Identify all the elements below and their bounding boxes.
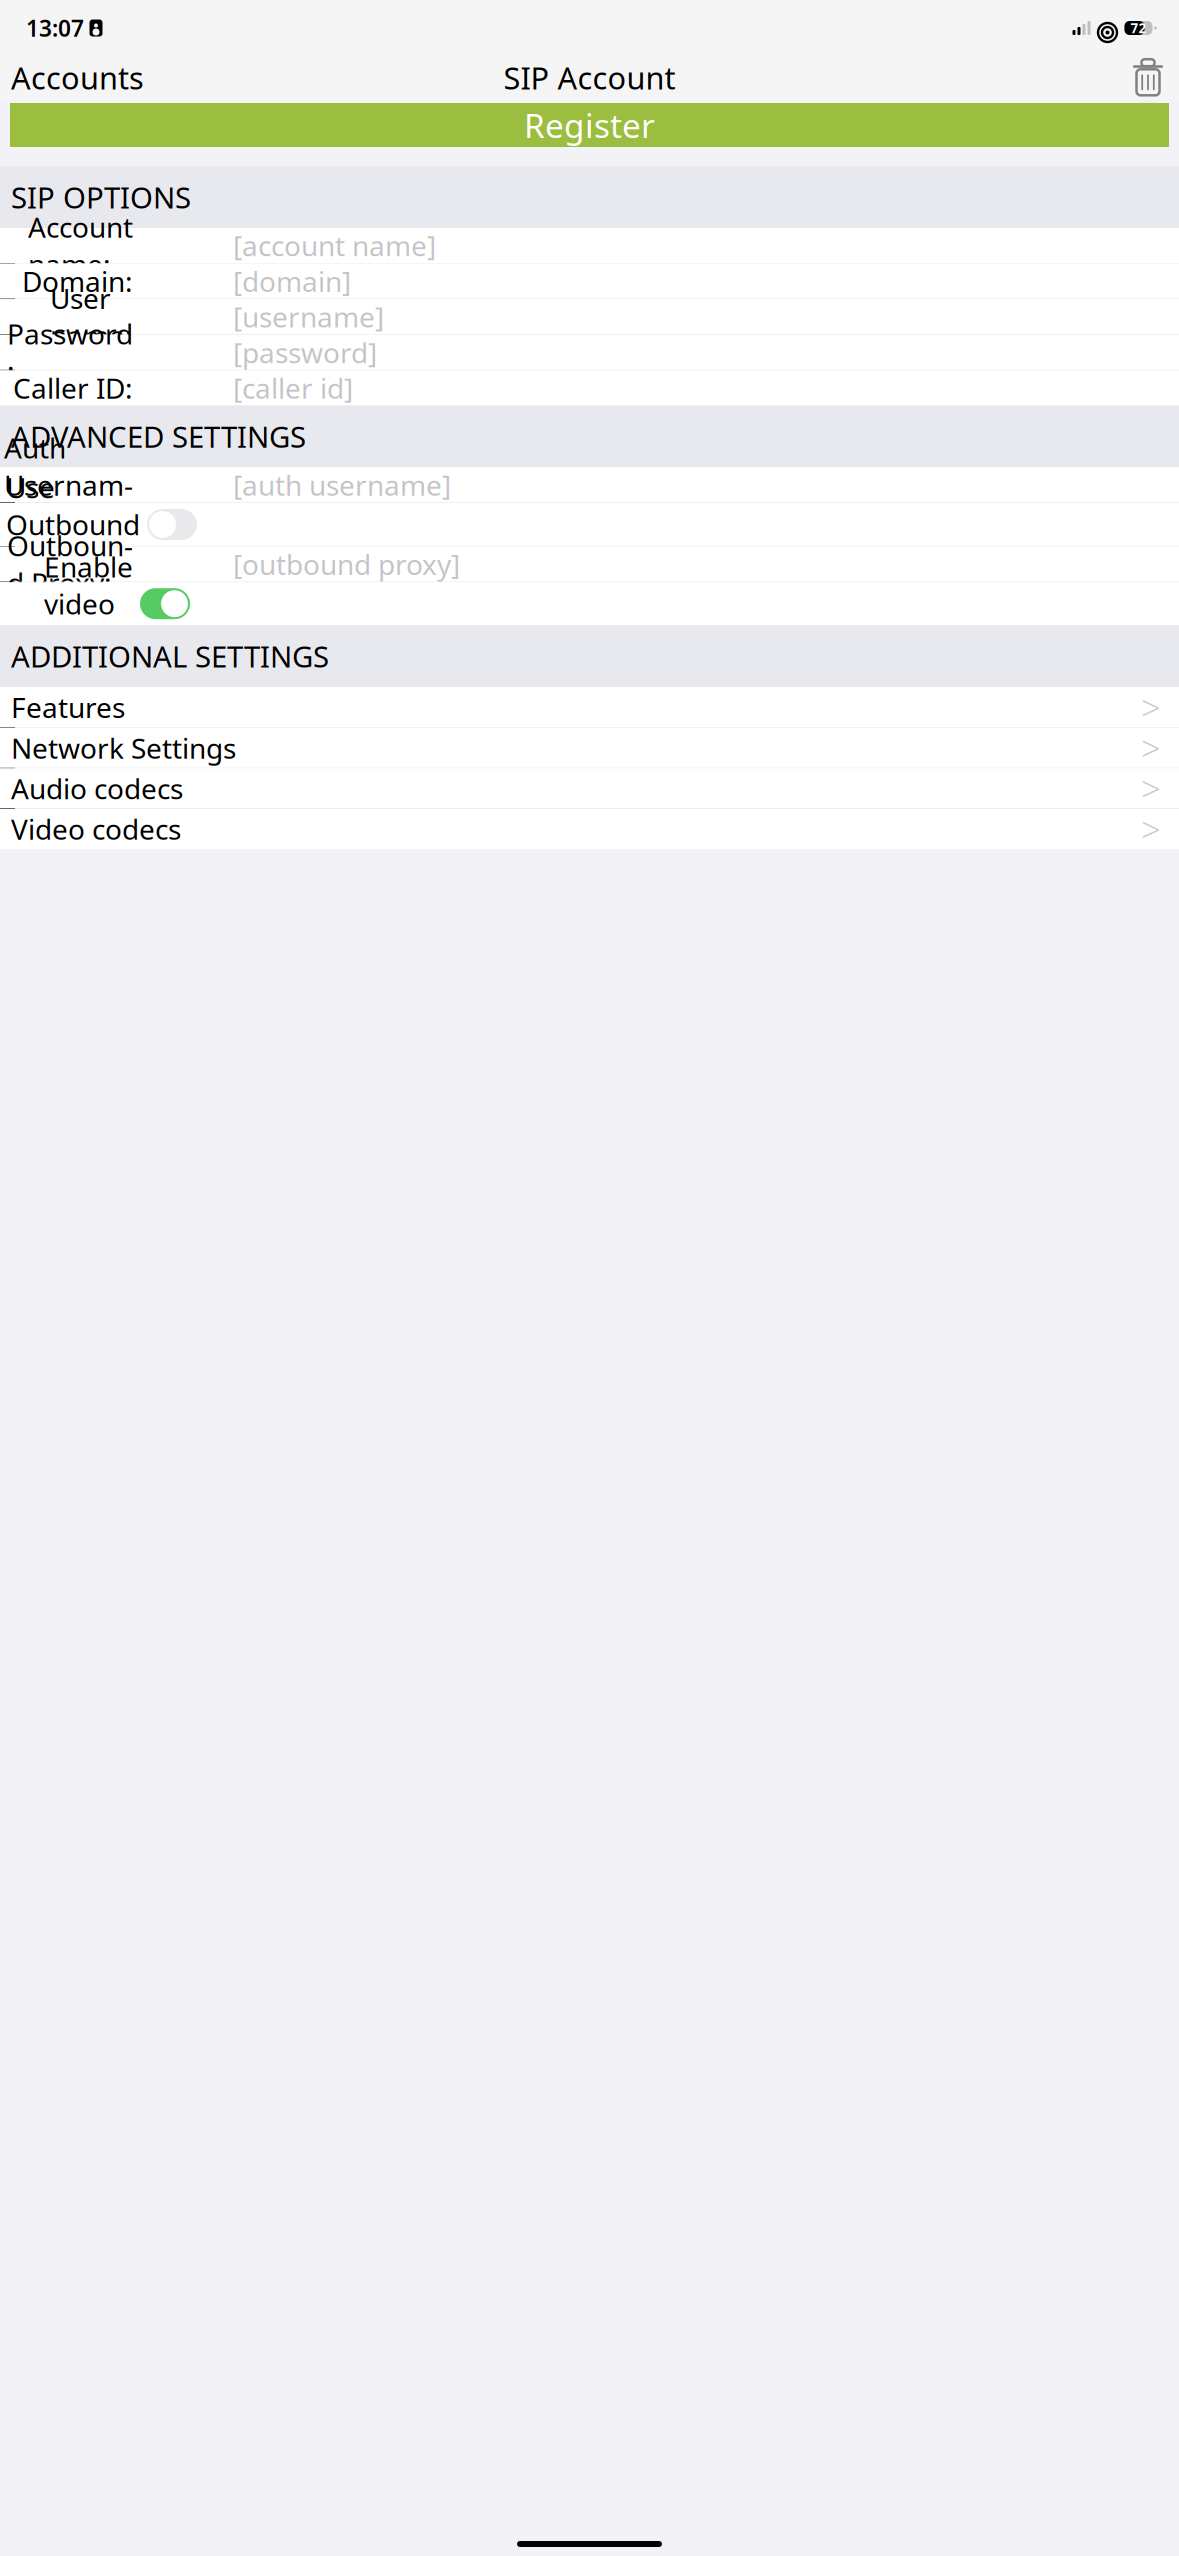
staticText: [domain] <box>233 262 351 300</box>
staticText: Caller ID: <box>13 369 133 406</box>
button[interactable]: Caller ID: <box>0 370 1179 405</box>
button[interactable]: Enable video FMTP <box>0 582 1179 625</box>
staticText: Domain: <box>22 262 133 300</box>
staticText: Network Settings <box>11 729 236 766</box>
staticText: > <box>1141 684 1161 730</box>
button[interactable]: Auth Username: <box>0 467 1179 502</box>
staticText: [caller id] <box>233 369 353 406</box>
button[interactable]: Network Settings <box>0 728 1179 768</box>
staticText: [outbound proxy] <box>233 545 460 583</box>
button[interactable]: Features <box>0 687 1179 727</box>
staticText: Features <box>11 689 125 726</box>
staticText: User name: <box>50 279 133 354</box>
button[interactable]: Use Outbound Proxy: <box>0 503 1179 546</box>
staticText: ADDITIONAL SETTINGS <box>11 637 329 676</box>
button[interactable]: Domain: <box>0 264 1179 299</box>
staticText: Use Outbound Proxy: <box>6 469 140 580</box>
staticText: 13:07 <box>26 13 84 43</box>
button[interactable]: Accounts <box>0 47 144 108</box>
staticText: Register <box>524 103 655 147</box>
staticText: Audio codecs <box>11 770 183 807</box>
staticText: [account name] <box>233 227 436 264</box>
staticText: > <box>1141 806 1161 852</box>
staticText: Password: <box>7 315 133 389</box>
staticText: > <box>1141 725 1161 771</box>
button[interactable]: Outbound Proxy: <box>0 547 1179 582</box>
staticText: Account name: <box>28 208 133 283</box>
staticText: SIP OPTIONS <box>11 177 191 216</box>
staticText: Outbound Proxy: <box>7 527 133 601</box>
button[interactable]: User name: <box>0 299 1179 334</box>
staticText: > <box>1141 765 1161 811</box>
button[interactable]: Password: <box>0 335 1179 370</box>
button[interactable]: Audio codecs <box>0 768 1179 808</box>
staticText: Enable video FMTP <box>44 548 133 659</box>
button[interactable]: Register <box>10 103 1169 147</box>
staticText: [username] <box>233 298 384 335</box>
staticText: SIP Account <box>503 57 675 98</box>
button[interactable]: Account name: <box>0 228 1179 263</box>
staticText: 72 <box>1130 19 1146 37</box>
button[interactable]: Delete account <box>1131 52 1179 102</box>
button[interactable]: Video codecs <box>0 809 1179 849</box>
staticText: ADVANCED SETTINGS <box>11 417 306 456</box>
staticText: [auth username] <box>233 466 451 503</box>
staticText: Auth Username: <box>4 429 133 541</box>
staticText: Video codecs <box>11 810 181 848</box>
staticText: [password] <box>233 334 377 371</box>
staticText: Accounts <box>11 57 144 98</box>
